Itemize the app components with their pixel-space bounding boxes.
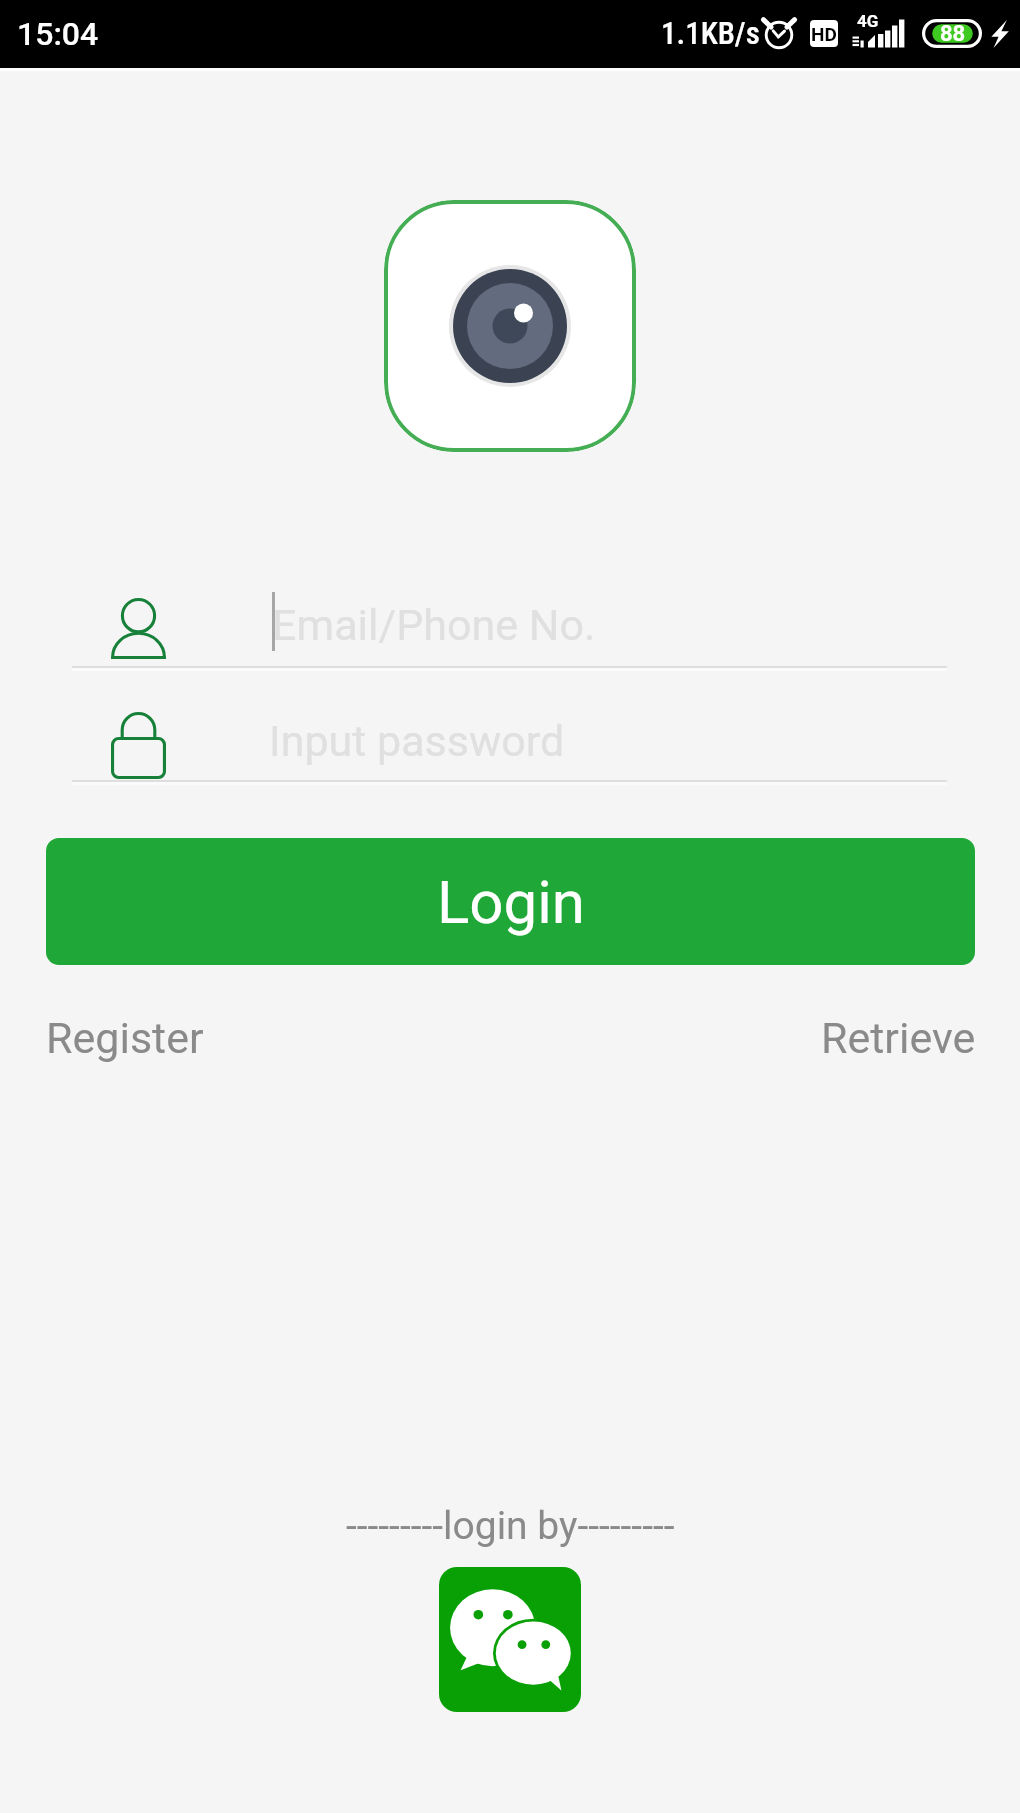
button[interactable]: Email or phone number field [72,586,947,666]
staticText: ---------login by--------- [346,1503,675,1549]
button[interactable]: Login [46,838,975,965]
staticText: Login [437,867,585,937]
button[interactable]: Register [46,1003,204,1073]
staticText: Input password [269,716,565,766]
staticText: 15:04 [17,15,99,53]
button[interactable]: Login with WeChat [439,1567,581,1712]
staticText: Register [46,1013,204,1063]
button[interactable]: Password field [72,700,947,780]
staticText: Email/Phone No. [272,600,596,650]
staticText: 1.1KB/s [661,15,760,51]
staticText: 4G [857,11,879,31]
staticText: 88 [940,21,966,47]
staticText: Retrieve [821,1013,976,1063]
button[interactable]: Retrieve [821,1003,976,1073]
staticText: HD [811,23,837,45]
